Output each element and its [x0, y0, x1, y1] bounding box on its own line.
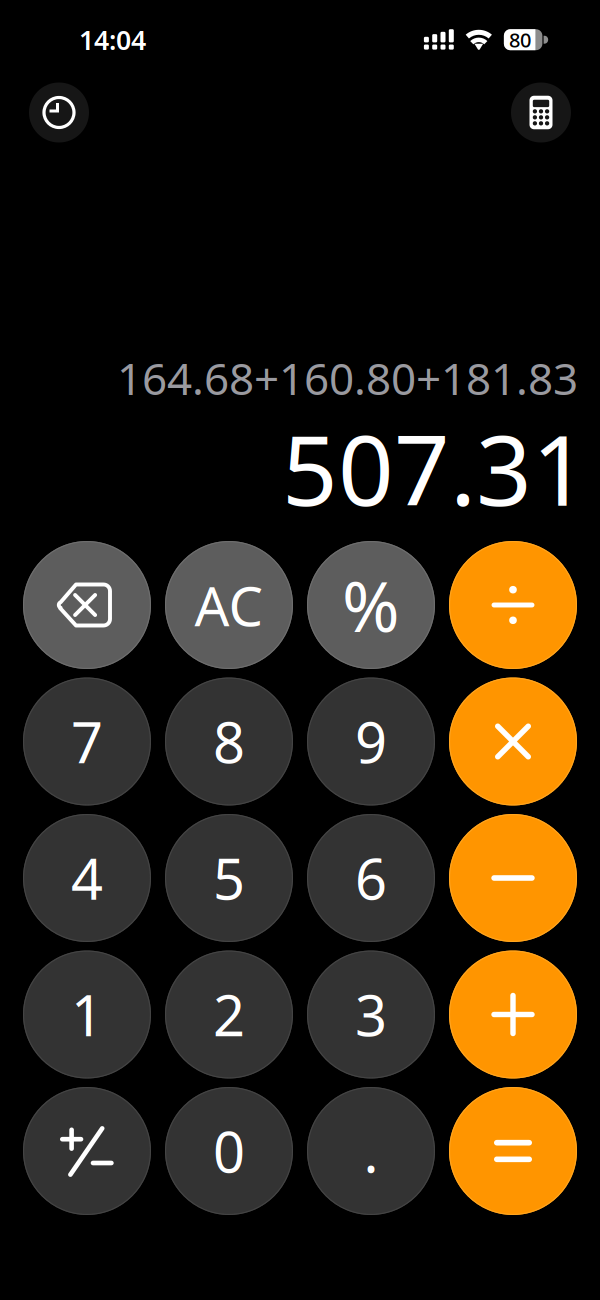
button[interactable]: 2: [165, 950, 293, 1078]
staticText: 3: [355, 977, 387, 1052]
button[interactable]: History: [29, 82, 89, 142]
staticText: 507.31: [282, 403, 588, 533]
staticText: AC: [194, 569, 263, 641]
button[interactable]: Divide: [449, 541, 577, 669]
staticText: 4: [71, 841, 103, 915]
button[interactable]: Equals: [449, 1087, 577, 1215]
staticText: 2: [213, 977, 245, 1052]
button[interactable]: Percent: [307, 541, 435, 669]
button[interactable]: Plus: [449, 950, 577, 1078]
staticText: 6: [355, 841, 387, 915]
button[interactable]: 9: [307, 677, 435, 805]
staticText: 0: [213, 1114, 245, 1188]
button[interactable]: Minus: [449, 814, 577, 942]
staticText: 14:04: [79, 22, 146, 57]
button[interactable]: Decimal point: [307, 1087, 435, 1215]
staticText: 80: [509, 26, 531, 53]
button[interactable]: 7: [23, 677, 151, 805]
staticText: .: [363, 1114, 378, 1188]
staticText: 1: [71, 977, 103, 1052]
staticText: 164.68+160.80+181.83: [117, 349, 578, 407]
button[interactable]: 4: [23, 814, 151, 942]
button[interactable]: 0: [165, 1087, 293, 1215]
button[interactable]: 1: [23, 950, 151, 1078]
staticText: 5: [213, 841, 245, 915]
button[interactable]: 6: [307, 814, 435, 942]
button[interactable]: AC: [165, 541, 293, 669]
button[interactable]: Plus minus: [23, 1087, 151, 1215]
button[interactable]: 5: [165, 814, 293, 942]
staticText: 9: [355, 704, 387, 779]
staticText: 8: [213, 704, 245, 779]
button[interactable]: 8: [165, 677, 293, 805]
button[interactable]: Calculator: [511, 82, 571, 142]
staticText: %: [342, 559, 400, 651]
button[interactable]: Multiply: [449, 677, 577, 805]
button[interactable]: 3: [307, 950, 435, 1078]
button[interactable]: Delete: [23, 541, 151, 669]
staticText: 7: [71, 704, 103, 779]
